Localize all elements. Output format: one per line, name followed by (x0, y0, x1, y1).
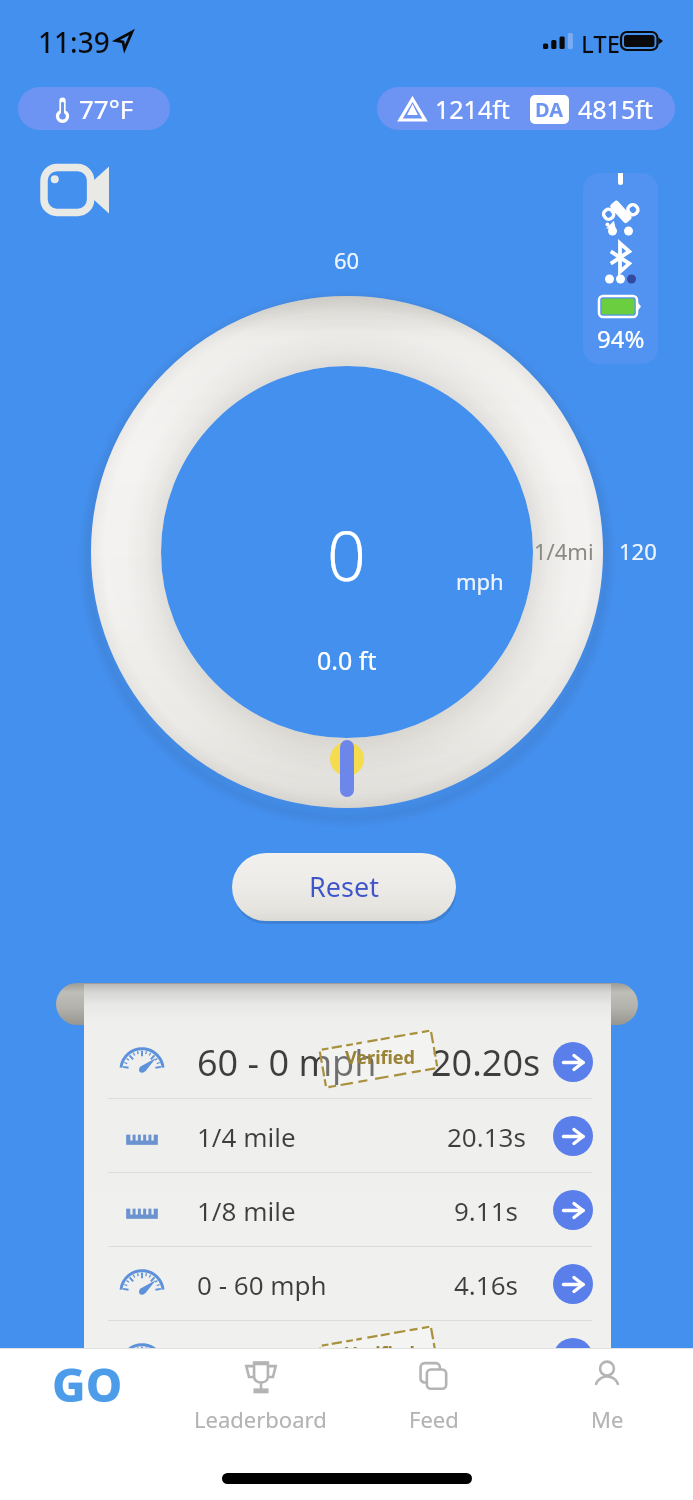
staticText: Me (591, 1404, 624, 1434)
staticText: 60 (334, 245, 360, 275)
button[interactable]: 1214ft (377, 87, 675, 130)
button[interactable]: 0 - 60 mph (84, 1247, 611, 1321)
button[interactable]: 77°F (18, 87, 170, 130)
staticText: 0.0 ft (317, 643, 377, 677)
staticText: Feed (409, 1404, 459, 1434)
button[interactable]: Reset (232, 853, 456, 921)
staticText: Verified (345, 1045, 415, 1070)
staticText: Verified (345, 1341, 415, 1366)
staticText: 1/4 mile (197, 1119, 296, 1154)
staticText: 4815ft (578, 92, 653, 126)
button[interactable]: Me (520, 1349, 693, 1452)
button[interactable]: Leaderboard (174, 1349, 347, 1452)
staticText: mph (456, 566, 504, 596)
button[interactable]: GO (0, 1349, 174, 1452)
staticText: 0 - 60 mph (197, 1267, 327, 1302)
staticText: 120 (619, 536, 657, 566)
staticText: 9.11s (454, 1193, 519, 1228)
button[interactable]: Details (553, 1042, 593, 1082)
button[interactable]: 60 - 0 mph (84, 1025, 611, 1099)
staticText: 94% (597, 322, 645, 355)
staticText: 0 (327, 508, 366, 601)
staticText: 20.20s (431, 1038, 541, 1087)
staticText: Reset (309, 868, 379, 905)
button[interactable]: Details (553, 1116, 593, 1156)
button[interactable]: 1/4 mile (84, 1099, 611, 1173)
button[interactable]: Details (553, 1338, 593, 1378)
button[interactable]: Details (84, 1321, 611, 1395)
button[interactable]: 94% (583, 173, 658, 364)
staticText: Leaderboard (194, 1404, 327, 1434)
staticText: 1/8 mile (197, 1193, 296, 1228)
staticText: 4.16s (454, 1267, 519, 1302)
staticText: LTE (581, 27, 621, 60)
staticText: 77°F (79, 91, 134, 126)
button[interactable]: Record video (40, 162, 110, 218)
staticText: 60 - 0 mph (197, 1038, 377, 1087)
staticText: 20.13s (447, 1119, 526, 1154)
staticText: 1/4mi (534, 536, 594, 566)
button[interactable]: Details (553, 1264, 593, 1304)
staticText: 11:39 (38, 23, 110, 61)
staticText: 1214ft (435, 92, 510, 126)
staticText: DA (535, 96, 564, 123)
button[interactable]: Details (553, 1190, 593, 1230)
button[interactable]: 1/8 mile (84, 1173, 611, 1247)
button[interactable]: Feed (347, 1349, 520, 1452)
staticText: GO (52, 1353, 123, 1416)
